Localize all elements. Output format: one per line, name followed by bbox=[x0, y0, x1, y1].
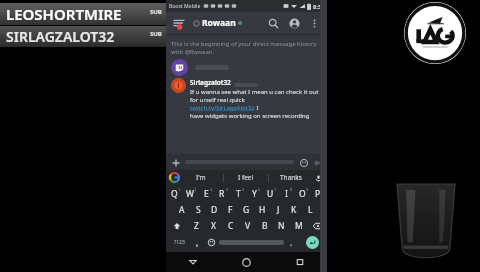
button[interactable]: Voice input bbox=[313, 173, 323, 183]
button[interactable]: I bbox=[278, 186, 294, 202]
button[interactable]: T bbox=[230, 186, 246, 202]
button[interactable]: R bbox=[214, 186, 230, 202]
button[interactable]: Comma bbox=[191, 234, 204, 251]
button[interactable]: Home bbox=[219, 252, 273, 272]
staticText: L bbox=[308, 204, 313, 216]
staticText: J bbox=[277, 204, 280, 216]
staticText: Sirlagzalot32 bbox=[190, 78, 231, 87]
button[interactable]: G bbox=[238, 202, 254, 218]
button[interactable]: D bbox=[206, 202, 222, 218]
staticText: 5 bbox=[242, 187, 245, 192]
staticText: SUB bbox=[150, 8, 162, 16]
button[interactable]: Send bbox=[312, 157, 323, 168]
staticText: K bbox=[291, 204, 297, 216]
staticText: I bbox=[285, 188, 288, 200]
button[interactable]: W bbox=[182, 186, 198, 202]
button[interactable]: K bbox=[286, 202, 302, 218]
staticText: 8 bbox=[290, 187, 293, 192]
button[interactable]: Emoji bbox=[298, 157, 309, 168]
staticText: D bbox=[211, 204, 218, 216]
staticText: X bbox=[211, 220, 216, 232]
button[interactable]: Enter bbox=[299, 234, 326, 251]
staticText: N bbox=[278, 220, 285, 232]
staticText: Thanks bbox=[280, 173, 302, 182]
button[interactable]: O bbox=[294, 186, 310, 202]
button[interactable]: Add attachment bbox=[170, 157, 181, 168]
button[interactable]: Emoji bbox=[204, 234, 219, 251]
button[interactable]: Backspace bbox=[307, 218, 326, 234]
staticText: S bbox=[196, 204, 201, 216]
button[interactable]: N bbox=[273, 218, 290, 234]
button[interactable]: Members bbox=[287, 16, 302, 31]
button[interactable]: Space bbox=[219, 240, 284, 245]
button[interactable]: SIRLAGZALOT32 bbox=[0, 26, 166, 47]
staticText: P bbox=[315, 188, 321, 200]
staticText: SUB bbox=[150, 30, 162, 38]
button[interactable]: LEOSHORTMIRE bbox=[0, 3, 166, 25]
staticText: 4 bbox=[226, 187, 229, 192]
staticText: I feel bbox=[238, 173, 254, 182]
button[interactable]: P bbox=[310, 186, 326, 202]
staticText: T bbox=[236, 188, 241, 200]
button[interactable]: Back bbox=[166, 252, 219, 272]
staticText: Rowaan bbox=[202, 17, 236, 29]
button[interactable]: Shift bbox=[167, 218, 187, 234]
button[interactable]: F bbox=[222, 202, 238, 218]
staticText: Z bbox=[194, 220, 199, 232]
staticText: 3 bbox=[210, 187, 213, 192]
button[interactable]: Recent apps bbox=[273, 252, 327, 272]
button[interactable]: I'm bbox=[179, 170, 223, 185]
button[interactable]: X bbox=[205, 218, 222, 234]
staticText: This is the beginning of your direct mes… bbox=[171, 40, 322, 56]
button[interactable]: V bbox=[239, 218, 256, 234]
button[interactable]: Q bbox=[167, 186, 182, 202]
button[interactable]: Y bbox=[246, 186, 262, 202]
button[interactable]: Period bbox=[284, 234, 299, 251]
staticText: H bbox=[259, 204, 266, 216]
staticText: 2 bbox=[194, 187, 197, 192]
button[interactable]: A bbox=[174, 202, 190, 218]
staticText: Q bbox=[171, 188, 178, 200]
staticText: F bbox=[228, 204, 233, 216]
staticText: 9 bbox=[306, 187, 309, 192]
staticText: have widgets working on screen recording bbox=[190, 112, 310, 120]
staticText: 1 bbox=[178, 187, 181, 192]
staticText: E bbox=[204, 188, 209, 200]
staticText: Boost Mobile bbox=[169, 3, 201, 10]
staticText: 6 bbox=[258, 187, 261, 192]
staticText: LEOSHORTMIRE bbox=[6, 4, 150, 24]
staticText: C bbox=[228, 220, 234, 232]
button[interactable]: B bbox=[256, 218, 273, 234]
button[interactable]: M bbox=[290, 218, 307, 234]
staticText: ?123 bbox=[174, 239, 185, 246]
button[interactable]: ?123 bbox=[167, 234, 191, 251]
button[interactable]: More options bbox=[307, 16, 322, 31]
staticText: SIRLAGZALOT32 bbox=[6, 27, 150, 46]
staticText: G bbox=[243, 204, 250, 216]
staticText: U bbox=[267, 188, 274, 200]
button[interactable]: H bbox=[254, 202, 270, 218]
staticText: 8:38 bbox=[313, 3, 324, 10]
staticText: V bbox=[245, 220, 251, 232]
button[interactable]: S bbox=[190, 202, 206, 218]
staticText: I'm bbox=[196, 173, 206, 182]
staticText: B bbox=[262, 220, 268, 232]
button[interactable]: I feel bbox=[224, 170, 268, 185]
staticText: O bbox=[299, 188, 306, 200]
button[interactable]: E bbox=[198, 186, 214, 202]
staticText: W bbox=[186, 188, 194, 200]
staticText: M bbox=[295, 220, 303, 232]
staticText: A bbox=[179, 204, 185, 216]
button[interactable]: U bbox=[262, 186, 278, 202]
button[interactable]: Search bbox=[266, 16, 281, 31]
button[interactable]: Open navigation menu bbox=[171, 15, 187, 31]
staticText: twitch.tv/SirLagzAlot32 bbox=[190, 104, 255, 112]
button[interactable]: L bbox=[302, 202, 318, 218]
button[interactable]: Thanks bbox=[269, 170, 313, 185]
staticText: . bbox=[290, 237, 293, 248]
staticText: I bbox=[255, 104, 259, 112]
button[interactable]: Z bbox=[187, 218, 205, 234]
button[interactable]: C bbox=[222, 218, 239, 234]
button[interactable]: J bbox=[270, 202, 286, 218]
